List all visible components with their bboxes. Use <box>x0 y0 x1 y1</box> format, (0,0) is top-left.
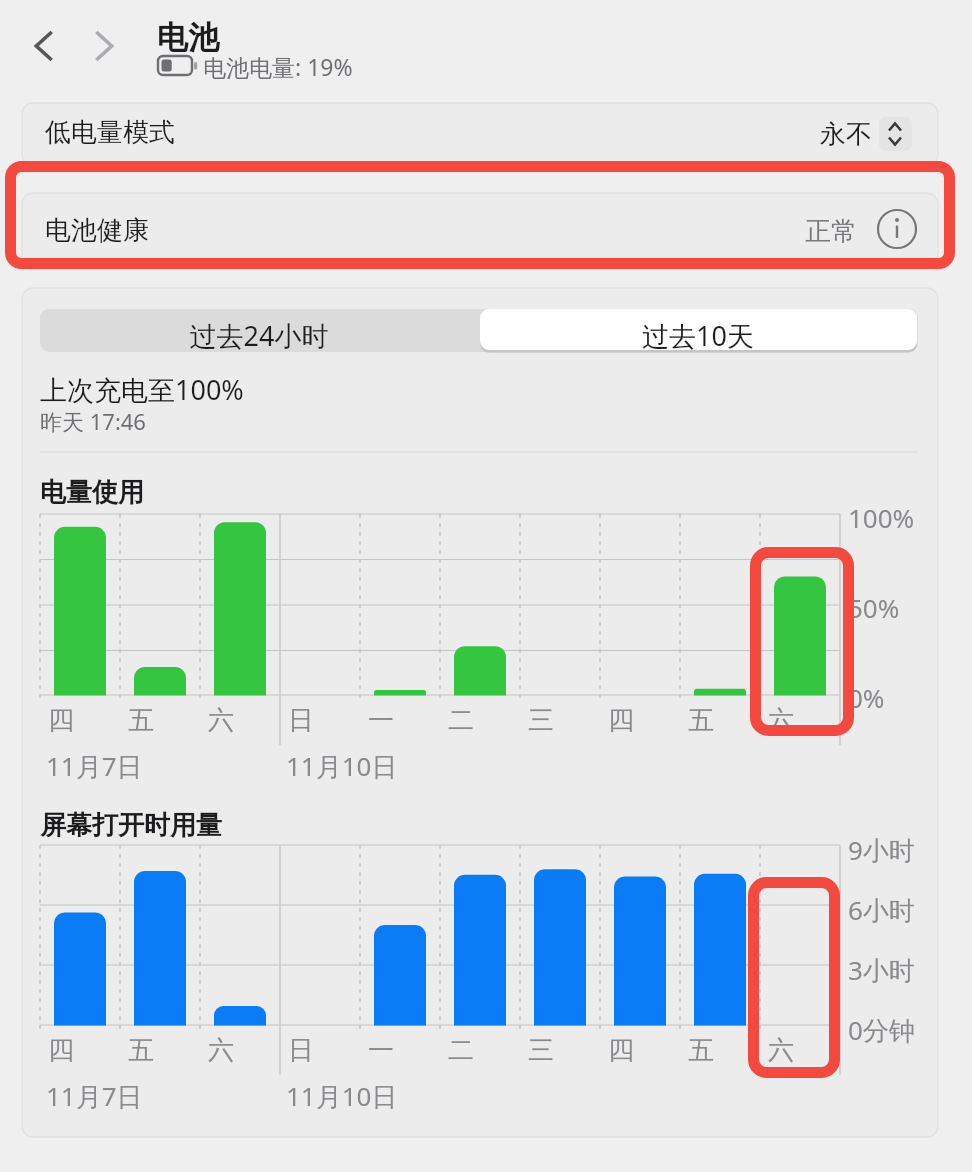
button[interactable]: 返回 <box>18 18 64 66</box>
button[interactable] <box>22 193 938 263</box>
button[interactable]: 前进 <box>84 18 130 66</box>
button[interactable]: 电池健康信息 <box>877 208 919 250</box>
button[interactable] <box>22 103 938 165</box>
button[interactable] <box>480 311 917 351</box>
button[interactable] <box>42 311 478 351</box>
